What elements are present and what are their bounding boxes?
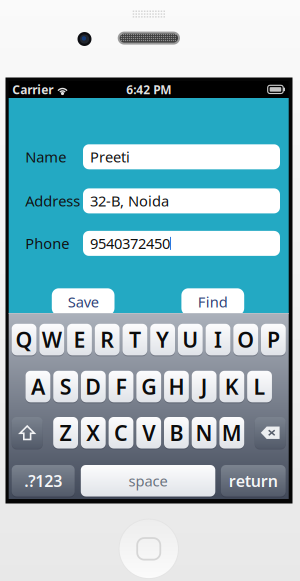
staticText: space	[129, 471, 168, 490]
button[interactable]: H	[164, 371, 189, 403]
staticText: 9540372450	[90, 234, 170, 253]
button[interactable]: return	[221, 465, 286, 498]
staticText: F	[115, 372, 126, 401]
button[interactable]: A	[26, 371, 50, 403]
staticText: S	[60, 372, 72, 401]
button[interactable]: .?123	[12, 465, 75, 498]
staticText: Y	[156, 325, 169, 354]
staticText: V	[142, 419, 155, 447]
staticText: L	[253, 372, 265, 401]
button[interactable]: M	[219, 417, 244, 450]
staticText: A	[31, 372, 45, 401]
button[interactable]: space	[81, 465, 215, 498]
staticText: O	[237, 325, 254, 354]
staticText: W	[42, 325, 62, 354]
staticText: C	[114, 419, 128, 447]
button[interactable]: W	[39, 324, 64, 356]
button[interactable]: D	[81, 371, 106, 403]
staticText: B	[169, 419, 183, 447]
staticText: Q	[16, 325, 33, 354]
staticText: Carrier	[12, 81, 53, 97]
button[interactable]: J	[192, 371, 216, 403]
button[interactable]: Delete	[255, 417, 286, 450]
staticText: 6:42 PM	[126, 81, 171, 97]
staticText: Find	[198, 292, 228, 312]
button[interactable]: C	[109, 417, 133, 450]
button[interactable]: O	[233, 324, 258, 356]
button[interactable]: Y	[150, 324, 175, 356]
button[interactable]: U	[178, 324, 203, 356]
staticText: K	[225, 372, 239, 401]
button[interactable]: Home	[118, 519, 179, 579]
staticText: J	[201, 372, 208, 401]
button[interactable]: P	[261, 324, 286, 356]
button[interactable]: Shift	[12, 417, 43, 450]
button[interactable]: R	[95, 324, 120, 356]
button[interactable]: N	[192, 417, 216, 450]
staticText: Phone	[25, 234, 69, 253]
button[interactable]: B	[164, 417, 189, 450]
button[interactable]: V	[136, 417, 161, 450]
button[interactable]: Q	[12, 324, 36, 356]
staticText: U	[182, 325, 198, 354]
staticText: Name	[25, 147, 66, 167]
staticText: X	[86, 419, 100, 447]
staticText: T	[129, 325, 141, 354]
button[interactable]: G	[136, 371, 161, 403]
button[interactable]: Z	[53, 417, 78, 450]
staticText: N	[196, 419, 213, 447]
staticText: I	[214, 325, 222, 354]
staticText: H	[168, 372, 184, 401]
button[interactable]: Find	[181, 288, 244, 315]
staticText: G	[141, 372, 156, 401]
button[interactable]: L	[247, 371, 272, 403]
button[interactable]: E	[67, 324, 92, 356]
button[interactable]: T	[122, 324, 147, 356]
staticText: Z	[60, 419, 72, 447]
staticText: P	[267, 325, 280, 354]
button[interactable]: K	[219, 371, 244, 403]
button[interactable]: X	[81, 417, 106, 450]
staticText: Address	[25, 191, 80, 211]
staticText: Save	[68, 292, 99, 312]
staticText: D	[85, 372, 101, 401]
staticText: 32-B, Noida	[90, 191, 169, 211]
staticText: E	[73, 325, 85, 354]
button[interactable]: S	[53, 371, 78, 403]
button[interactable]: Save	[52, 288, 114, 315]
staticText: R	[100, 325, 114, 354]
button[interactable]: I	[206, 324, 230, 356]
staticText: M	[222, 419, 242, 447]
button[interactable]: F	[109, 371, 133, 403]
staticText: .?123	[24, 470, 62, 491]
staticText: return	[229, 470, 278, 491]
staticText: Preeti	[90, 147, 130, 167]
